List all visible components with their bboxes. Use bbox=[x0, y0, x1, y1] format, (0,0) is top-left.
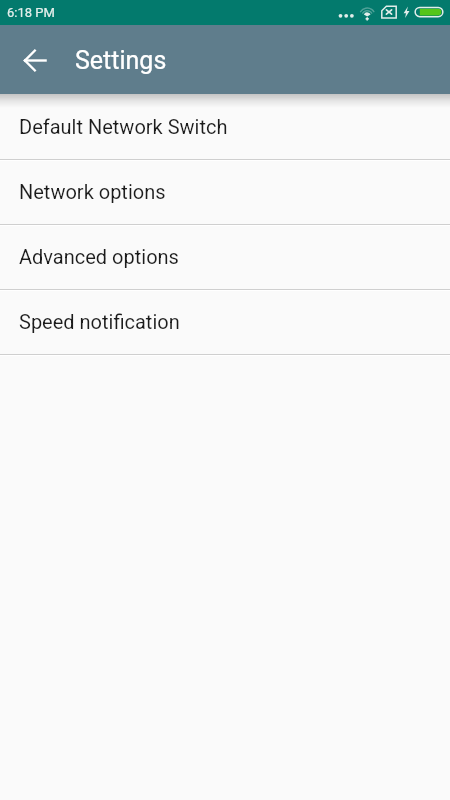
staticText: Default Network Switch bbox=[19, 115, 228, 138]
staticText: Settings bbox=[75, 46, 167, 75]
button[interactable]: Back bbox=[13, 38, 57, 82]
button[interactable]: Network options bbox=[0, 161, 450, 224]
staticText: 6:18 PM bbox=[7, 5, 55, 20]
button[interactable]: Speed notification bbox=[0, 291, 450, 354]
button[interactable]: Advanced options bbox=[0, 226, 450, 289]
staticText: Network options bbox=[19, 180, 166, 203]
staticText: Speed notification bbox=[19, 310, 180, 333]
staticText: Advanced options bbox=[19, 245, 179, 268]
button[interactable]: Default Network Switch bbox=[0, 96, 450, 159]
